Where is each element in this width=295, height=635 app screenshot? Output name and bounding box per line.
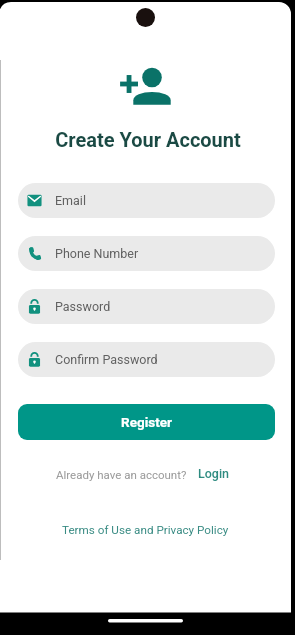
- staticText: Register: [121, 414, 172, 430]
- button[interactable]: Password: [18, 289, 275, 324]
- button[interactable]: Confirm Password: [18, 342, 275, 377]
- button[interactable]: Email: [18, 183, 275, 218]
- button[interactable]: Login: [198, 466, 230, 481]
- button[interactable]: Phone Number: [18, 236, 275, 271]
- staticText: Phone Number: [55, 246, 139, 261]
- button[interactable]: Terms of Use and Privacy Policy: [62, 523, 229, 537]
- staticText: Already have an account?: [56, 468, 187, 481]
- staticText: Terms of Use and Privacy Policy: [62, 523, 229, 537]
- staticText: Password: [55, 299, 111, 314]
- staticText: Email: [55, 193, 86, 208]
- staticText: Login: [198, 466, 230, 481]
- staticText: Confirm Password: [55, 352, 158, 367]
- other: Create account: [118, 64, 174, 108]
- staticText: Create Your Account: [55, 128, 241, 151]
- button[interactable]: Register: [18, 404, 275, 440]
